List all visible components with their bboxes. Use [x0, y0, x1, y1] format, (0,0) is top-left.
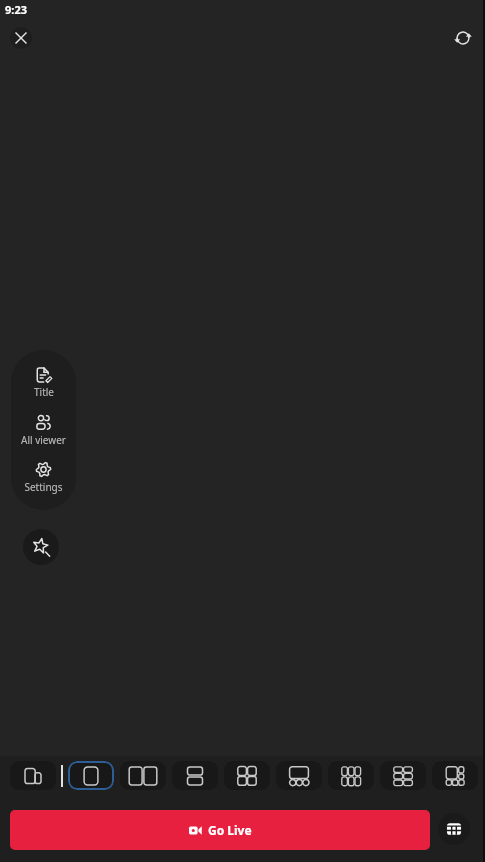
button[interactable]: Effects — [23, 529, 59, 565]
button[interactable]: Four grid layout — [224, 761, 270, 790]
button[interactable]: Picture in picture layout — [10, 761, 56, 790]
button[interactable]: Presenter layout — [276, 761, 322, 790]
button[interactable]: Settings — [11, 461, 76, 494]
staticText: Settings — [24, 480, 63, 494]
button[interactable]: All viewer — [11, 414, 76, 447]
staticText: All viewer — [21, 433, 66, 447]
staticText: Title — [34, 385, 54, 399]
button[interactable]: Close — [10, 27, 32, 49]
button[interactable]: Grid layout — [438, 813, 470, 845]
button[interactable]: Six vertical layout — [328, 761, 374, 790]
button[interactable]: Mixed layout — [432, 761, 478, 790]
button[interactable]: Go Live — [10, 810, 430, 850]
button[interactable]: Refresh — [452, 27, 474, 49]
button[interactable]: Two row layout — [172, 761, 218, 790]
staticText: 9:23 — [5, 2, 27, 17]
button[interactable]: Six horizontal layout — [380, 761, 426, 790]
button[interactable]: Single layout — [68, 761, 114, 790]
staticText: Go Live — [208, 822, 252, 838]
button[interactable]: Title — [11, 367, 76, 399]
button[interactable]: Two column layout — [120, 761, 166, 790]
